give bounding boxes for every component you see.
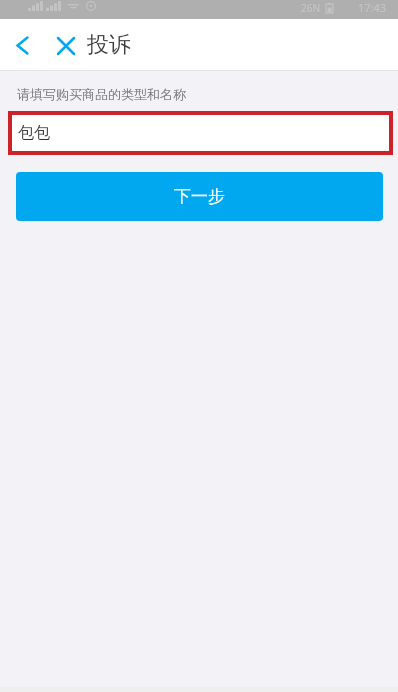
staticText: 投诉 [87,31,131,59]
staticText: 包包 [18,123,50,143]
button[interactable]: Back [8,31,37,60]
staticText: 17:43 [358,0,387,15]
button[interactable]: 下一步 [16,172,383,221]
staticText: 26N [301,1,321,15]
button[interactable]: Close [51,31,80,60]
staticText: 请填写购买商品的类型和名称 [17,86,186,102]
button[interactable]: 包包 [12,115,389,151]
staticText: 下一步 [174,186,225,207]
